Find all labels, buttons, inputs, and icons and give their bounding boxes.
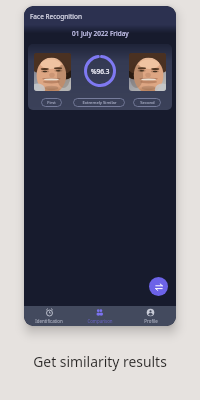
button[interactable]: Compare faces bbox=[149, 277, 168, 296]
staticText: 01 July 2022 Friday bbox=[72, 29, 129, 38]
staticText: First bbox=[47, 100, 56, 106]
staticText: %96.3 bbox=[91, 67, 110, 76]
button[interactable]: Second bbox=[133, 98, 161, 107]
staticText: Comparison bbox=[87, 318, 113, 324]
staticText: Profile bbox=[144, 318, 158, 324]
staticText: Face Recognition bbox=[30, 12, 82, 21]
button[interactable]: Identification bbox=[24, 307, 74, 326]
staticText: Identification bbox=[35, 318, 63, 324]
button[interactable]: Profile bbox=[125, 307, 176, 326]
staticText: Get similarity results bbox=[33, 352, 167, 371]
button[interactable]: First bbox=[41, 98, 62, 107]
staticText: Second bbox=[140, 100, 155, 106]
button[interactable]: Comparison bbox=[74, 307, 125, 326]
button[interactable]: Extremely Similar bbox=[73, 98, 125, 107]
staticText: Extremely Similar bbox=[82, 100, 117, 106]
